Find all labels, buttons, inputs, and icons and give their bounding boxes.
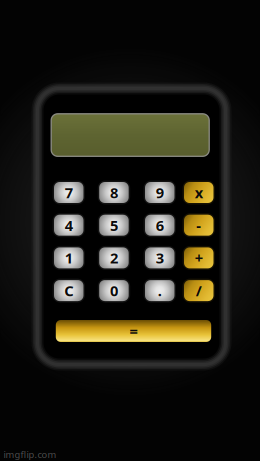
staticText: 2 xyxy=(110,248,118,268)
button[interactable]: 9 xyxy=(143,180,176,205)
button[interactable]: C xyxy=(52,278,85,303)
button[interactable]: . xyxy=(143,278,176,303)
button[interactable]: 2 xyxy=(97,245,131,270)
staticText: imgflip.com xyxy=(3,448,56,461)
staticText: 0 xyxy=(110,281,118,300)
staticText: 1 xyxy=(65,248,73,268)
button[interactable]: 4 xyxy=(52,213,85,238)
button[interactable]: + xyxy=(182,245,215,270)
button[interactable]: 3 xyxy=(143,245,176,270)
button[interactable]: 5 xyxy=(97,213,131,238)
staticText: 9 xyxy=(156,183,164,202)
button[interactable]: - xyxy=(182,213,215,238)
staticText: 4 xyxy=(65,215,73,235)
button[interactable]: 6 xyxy=(143,213,176,238)
button[interactable]: / xyxy=(182,278,215,303)
button[interactable]: 0 xyxy=(97,278,131,303)
staticText: 3 xyxy=(156,248,164,268)
button[interactable]: 7 xyxy=(52,180,85,205)
staticText: C xyxy=(64,281,73,300)
staticText: / xyxy=(196,281,202,300)
button[interactable]: x xyxy=(182,180,215,205)
staticText: 8 xyxy=(110,183,118,202)
staticText: + xyxy=(195,248,203,268)
staticText: = xyxy=(129,321,137,341)
staticText: 7 xyxy=(65,183,73,202)
staticText: . xyxy=(158,281,162,300)
button[interactable]: = xyxy=(56,320,211,342)
button[interactable]: 8 xyxy=(97,180,131,205)
button[interactable]: 1 xyxy=(52,245,85,270)
staticText: x xyxy=(195,183,203,202)
staticText: 6 xyxy=(156,215,164,235)
staticText: - xyxy=(196,215,201,235)
staticText: 5 xyxy=(110,215,118,235)
